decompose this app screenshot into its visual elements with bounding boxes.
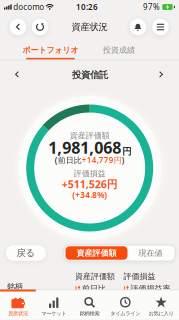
button[interactable]: 戻る: [6, 245, 46, 261]
staticText: ): [122, 155, 125, 165]
button[interactable]: 現在値: [127, 246, 173, 260]
staticText: 1,981,068: [48, 137, 121, 158]
staticText: 戻る: [16, 247, 35, 259]
staticText: マーケット: [41, 310, 66, 317]
staticText: (+34.8%): [72, 190, 107, 200]
button[interactable]: 銘柄検索: [72, 292, 107, 320]
button[interactable]: メニュー: [152, 19, 169, 35]
staticText: 前日比: [82, 284, 106, 294]
staticText: 銘柄検索: [79, 310, 99, 317]
staticText: 銘柄: [7, 282, 23, 291]
button[interactable]: 通知: [130, 19, 146, 35]
staticText: docomo: [13, 2, 44, 12]
staticText: 投資成績: [103, 45, 135, 55]
staticText: 評価損益率: [130, 284, 170, 294]
staticText: +511,526円: [62, 177, 118, 191]
button[interactable]: 資産評価額: [65, 246, 127, 260]
staticText: 資産評価額: [70, 131, 110, 140]
staticText: 現在値: [138, 248, 162, 258]
staticText: 円: [122, 146, 131, 157]
button[interactable]: 資産評価額: [75, 271, 115, 294]
staticText: 評価損益: [123, 271, 155, 281]
staticText: 資産評価額: [75, 271, 115, 281]
button[interactable]: 評価損益: [123, 271, 170, 294]
staticText: 資産評価額: [76, 248, 116, 258]
staticText: タイムライン: [110, 310, 140, 317]
staticText: +14,779円: [82, 155, 122, 165]
staticText: 投資信託: [72, 69, 108, 81]
button[interactable]: 戻る: [10, 19, 26, 35]
button[interactable]: お気に入り: [143, 292, 179, 320]
button[interactable]: ポートフォリオ: [6, 41, 95, 59]
button[interactable]: 投資成績: [74, 41, 164, 59]
button[interactable]: タイムライン: [107, 292, 143, 320]
staticText: 資産状況: [8, 310, 28, 317]
button[interactable]: 前へ: [10, 67, 24, 81]
staticText: (前日比: [55, 155, 82, 165]
button[interactable]: マーケット: [36, 292, 72, 320]
staticText: 97%: [143, 2, 160, 12]
staticText: ポートフォリオ: [22, 45, 78, 55]
button[interactable]: 銘柄: [2, 282, 28, 294]
button[interactable]: 次へ: [154, 67, 168, 81]
button[interactable]: 資産状況: [0, 292, 36, 320]
staticText: 10:26: [76, 2, 98, 12]
staticText: 資産状況: [71, 21, 107, 33]
button[interactable]: 更新: [32, 19, 48, 35]
staticText: お気に入り: [149, 310, 174, 317]
staticText: 評価損益: [74, 169, 106, 178]
